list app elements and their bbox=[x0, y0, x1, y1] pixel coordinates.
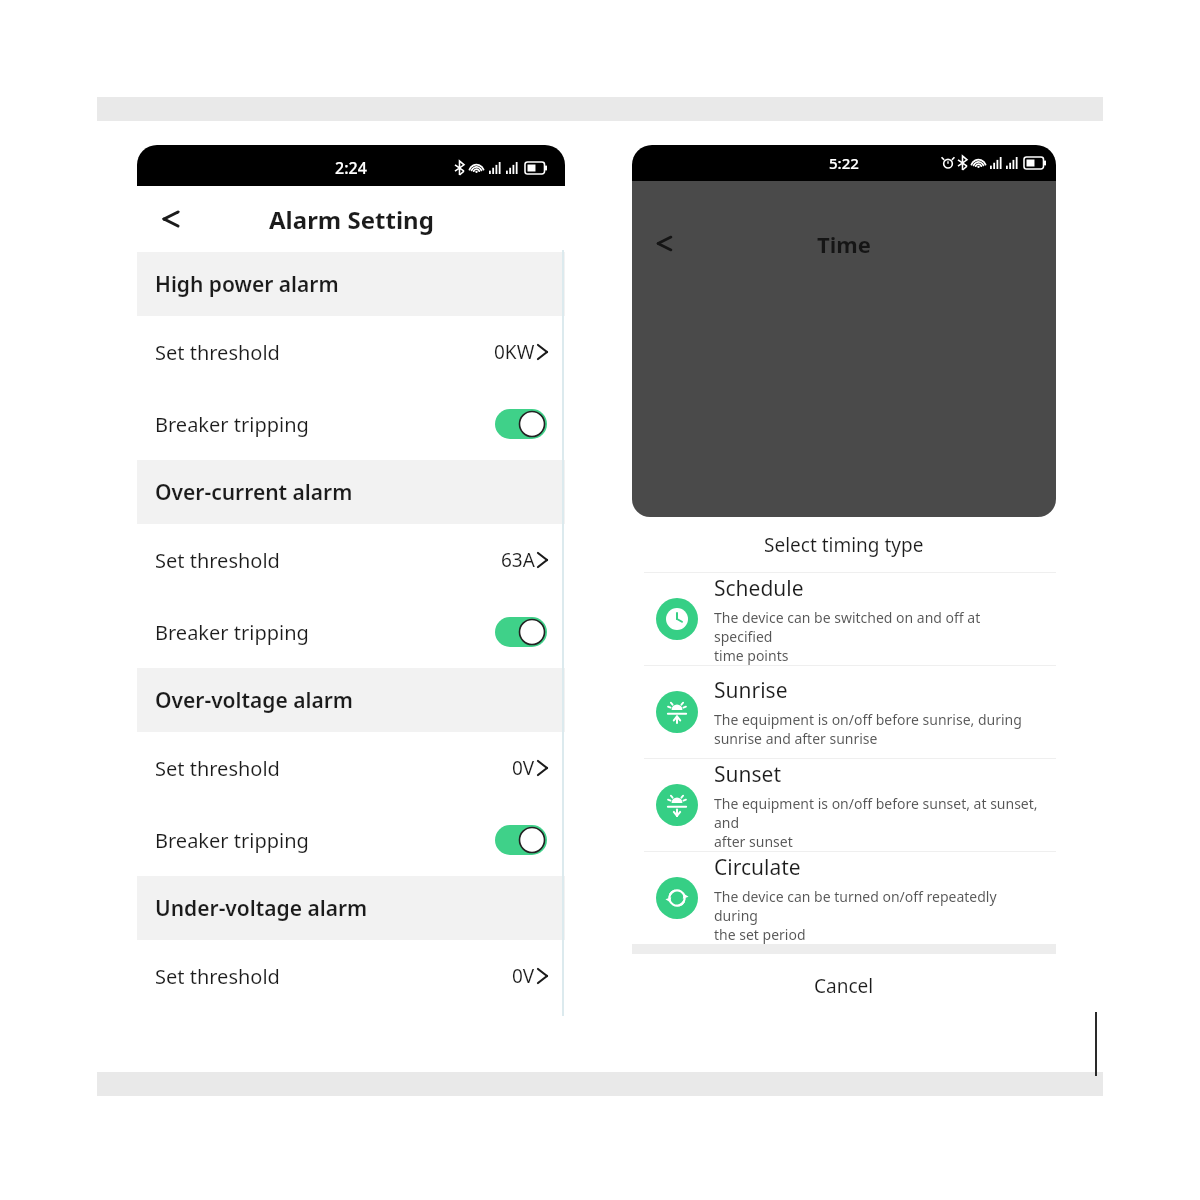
staticText: 0KW bbox=[494, 339, 535, 365]
staticText: Breaker tripping bbox=[155, 619, 309, 646]
staticText: Under-voltage alarm bbox=[155, 894, 368, 923]
staticText: The equipment is on/off before sunrise, … bbox=[714, 710, 1022, 748]
button[interactable]: Sunset bbox=[632, 759, 1056, 851]
staticText: Select timing type bbox=[764, 532, 924, 558]
staticText: Breaker tripping bbox=[155, 827, 309, 854]
button[interactable]: Set threshold bbox=[137, 316, 565, 388]
staticText: Over-current alarm bbox=[155, 478, 353, 507]
button[interactable]: Breaker tripping bbox=[137, 388, 565, 460]
staticText: Cancel bbox=[814, 973, 874, 999]
button[interactable]: Back bbox=[149, 197, 193, 241]
staticText: The device can be turned on/off repeated… bbox=[714, 887, 1042, 944]
staticText: Over-voltage alarm bbox=[155, 686, 354, 715]
staticText: Sunrise bbox=[714, 676, 788, 705]
staticText: Schedule bbox=[714, 574, 804, 603]
staticText: 5:22 bbox=[829, 153, 859, 173]
staticText: High power alarm bbox=[155, 270, 339, 299]
staticText: The equipment is on/off before sunset, a… bbox=[714, 794, 1042, 851]
button[interactable]: Schedule bbox=[632, 573, 1056, 665]
button[interactable]: Sunrise bbox=[632, 666, 1056, 758]
button[interactable]: Circulate bbox=[632, 852, 1056, 944]
staticText: Set threshold bbox=[155, 963, 280, 990]
staticText: Set threshold bbox=[155, 339, 280, 366]
staticText: Time bbox=[817, 229, 871, 259]
staticText: Circulate bbox=[714, 853, 801, 882]
staticText: 0V bbox=[512, 755, 535, 781]
button[interactable]: Breaker tripping bbox=[137, 596, 565, 668]
staticText: Set threshold bbox=[155, 547, 280, 574]
staticText: Alarm Setting bbox=[269, 203, 434, 236]
staticText: Breaker tripping bbox=[155, 411, 309, 438]
staticText: Sunset bbox=[714, 760, 781, 789]
button[interactable]: Back bbox=[642, 221, 686, 265]
button[interactable]: Cancel bbox=[632, 954, 1056, 1017]
button[interactable]: Set threshold bbox=[137, 732, 565, 804]
button[interactable]: Set threshold bbox=[137, 940, 565, 1012]
staticText: 0V bbox=[512, 963, 535, 989]
staticText: 2:24 bbox=[335, 157, 367, 179]
staticText: 63A bbox=[501, 547, 535, 573]
staticText: Set threshold bbox=[155, 755, 280, 782]
button[interactable]: Breaker tripping bbox=[137, 804, 565, 876]
button[interactable]: Set threshold bbox=[137, 524, 565, 596]
staticText: The device can be switched on and off at… bbox=[714, 608, 1042, 665]
